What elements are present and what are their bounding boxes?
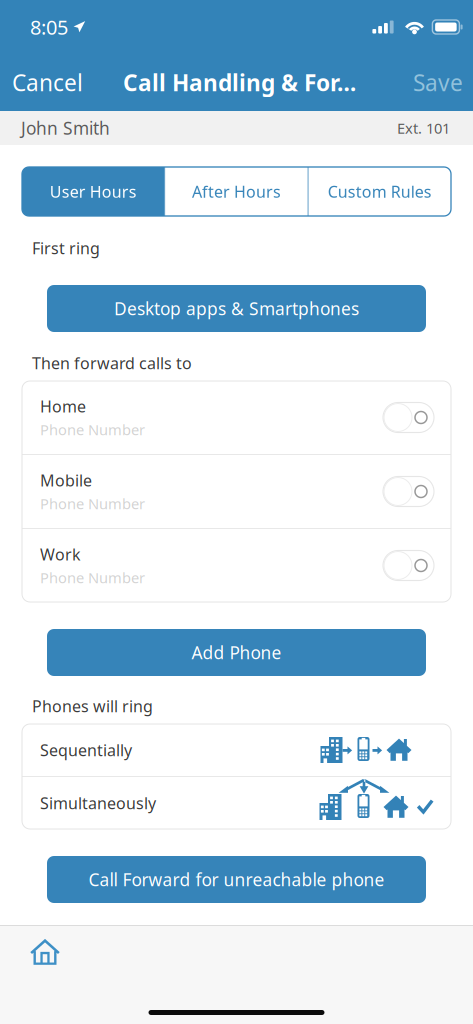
staticText: Call Forward for unreachable phone xyxy=(88,868,384,891)
button[interactable]: Home xyxy=(14,926,76,978)
button[interactable]: Save xyxy=(399,58,473,106)
button[interactable]: User Hours xyxy=(22,167,164,216)
button[interactable]: Home xyxy=(22,381,451,454)
staticText: Home xyxy=(40,396,86,417)
staticText: Work xyxy=(40,544,81,565)
button[interactable]: Work xyxy=(22,529,451,602)
staticText: Simultaneously xyxy=(40,792,156,814)
button[interactable]: Call Forward for unreachable phone xyxy=(47,856,426,903)
button[interactable]: Add Phone xyxy=(47,629,426,676)
staticText: Custom Rules xyxy=(328,181,432,202)
button[interactable]: Cancel xyxy=(0,58,97,106)
staticText: Sequentially xyxy=(40,739,132,761)
button[interactable]: After Hours xyxy=(165,167,308,216)
staticText: Phones will ring xyxy=(32,695,153,717)
staticText: Then forward calls to xyxy=(32,352,192,374)
staticText: User Hours xyxy=(50,181,137,202)
staticText: Save xyxy=(413,67,463,97)
button[interactable]: Custom Rules xyxy=(309,167,451,216)
staticText: Phone Number xyxy=(40,420,145,439)
staticText: Mobile xyxy=(40,470,92,491)
staticText: Phone Number xyxy=(40,494,145,513)
staticText: First ring xyxy=(32,237,100,259)
button[interactable]: Desktop apps & Smartphones xyxy=(47,285,426,332)
staticText: John Smith xyxy=(21,116,110,139)
staticText: After Hours xyxy=(192,181,281,202)
staticText: Call Handling & For… xyxy=(123,67,356,97)
staticText: Phone Number xyxy=(40,568,145,587)
staticText: 8:05 xyxy=(30,14,68,40)
staticText: Ext. 101 xyxy=(397,118,450,138)
staticText: Cancel xyxy=(12,67,83,97)
staticText: Desktop apps & Smartphones xyxy=(114,297,359,320)
button[interactable]: Simultaneously xyxy=(22,777,451,829)
staticText: Add Phone xyxy=(191,641,281,664)
button[interactable]: Sequentially xyxy=(22,724,451,776)
button[interactable]: Mobile xyxy=(22,455,451,528)
